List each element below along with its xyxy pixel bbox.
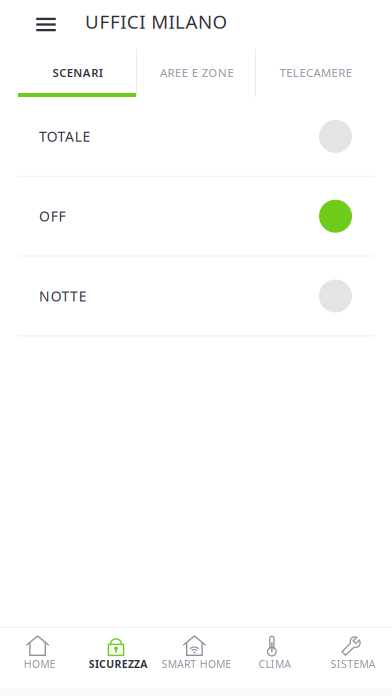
button[interactable]: CLIMA	[235, 628, 314, 688]
button[interactable]: AREE E ZONE	[137, 49, 255, 97]
staticText: TELECAMERE	[280, 65, 355, 80]
button[interactable]: SCENARI	[18, 49, 136, 97]
staticText: AREE E ZONE	[160, 65, 237, 80]
staticText: HOME	[24, 657, 55, 685]
button[interactable]: Menu	[24, 2, 68, 46]
staticText: CLIMA	[258, 657, 291, 685]
button[interactable]: OFF	[0, 177, 392, 256]
button[interactable]: NOTTE	[0, 257, 392, 335]
staticText: SICUREZZA	[89, 657, 147, 685]
button[interactable]: SICUREZZA	[78, 628, 157, 688]
staticText: SMART HOME	[161, 657, 231, 685]
staticText: SCENARI	[53, 65, 106, 80]
staticText: TOTALE	[39, 127, 95, 146]
staticText: SISTEMA	[331, 657, 376, 685]
button[interactable]: SMART HOME	[157, 628, 235, 688]
button[interactable]: TOTALE	[0, 97, 392, 176]
button[interactable]: TELECAMERE	[256, 49, 374, 97]
staticText: NOTTE	[39, 287, 91, 305]
button[interactable]: SISTEMA	[314, 628, 392, 688]
staticText: OFF	[39, 207, 70, 226]
button[interactable]: HOME	[0, 628, 78, 688]
staticText: UFFICI MILANO	[85, 9, 233, 34]
